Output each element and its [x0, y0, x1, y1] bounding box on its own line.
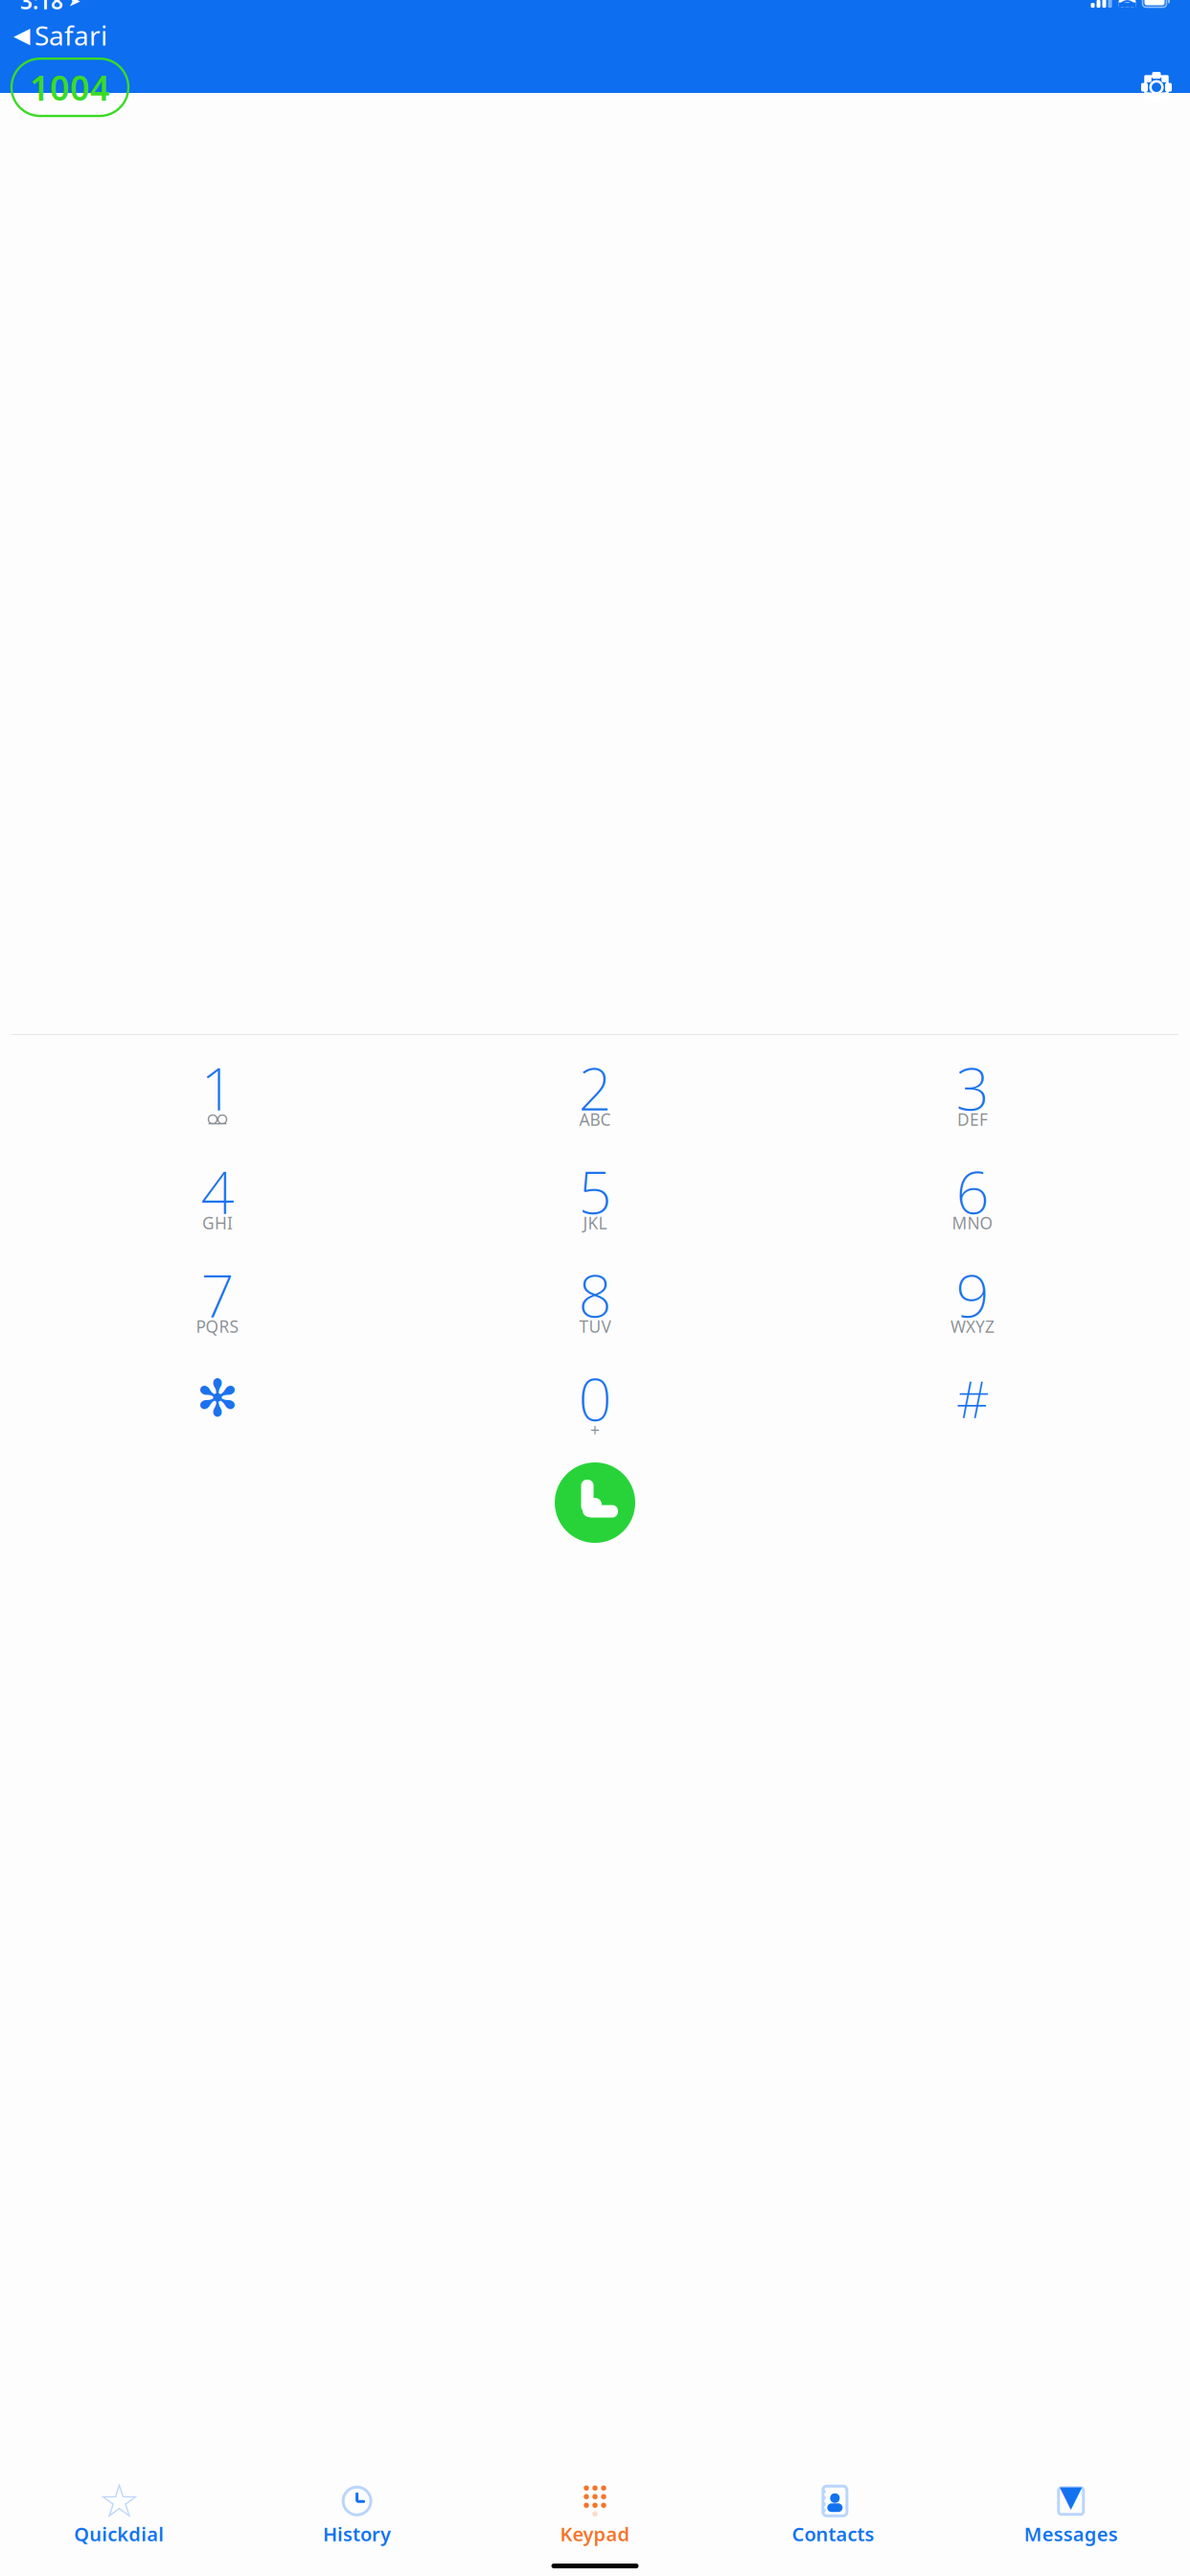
button[interactable]: ✻ — [29, 1367, 406, 1443]
staticText: ◀ — [13, 23, 30, 47]
button[interactable]: 0 — [406, 1367, 784, 1443]
staticText: + — [590, 1419, 600, 1441]
button[interactable]: Call — [555, 1462, 635, 1543]
staticText: 1 — [201, 1049, 234, 1127]
staticText: GHI — [202, 1212, 233, 1234]
staticText: JKL — [583, 1212, 607, 1234]
button[interactable]: # — [784, 1367, 1161, 1443]
button[interactable]: 1004 — [11, 59, 128, 116]
staticText: MNO — [952, 1212, 993, 1234]
staticText: Quickdial — [74, 2521, 164, 2547]
button[interactable]: ◀ — [7, 15, 114, 55]
button[interactable]: 3 — [784, 1056, 1161, 1133]
staticText: 6 — [956, 1152, 989, 1230]
staticText: ➤ — [68, 0, 80, 10]
staticText: TUV — [579, 1315, 611, 1337]
staticText: 4 — [201, 1152, 234, 1230]
staticText: History — [323, 2521, 391, 2547]
staticText: 3:18 — [20, 0, 63, 15]
button[interactable]: History — [238, 2488, 476, 2543]
staticText: 7 — [201, 1256, 234, 1334]
staticText: Messages — [1024, 2521, 1118, 2547]
button[interactable]: Contacts — [714, 2488, 952, 2543]
button[interactable]: 8 — [406, 1263, 784, 1340]
button[interactable]: 4 — [29, 1160, 406, 1236]
staticText: ☆ — [98, 2474, 140, 2528]
staticText: # — [956, 1364, 989, 1432]
staticText: Safari — [34, 17, 107, 53]
staticText: ▼ — [1060, 2479, 1082, 2513]
button[interactable]: Settings — [1134, 65, 1179, 109]
button[interactable]: ▼ — [952, 2488, 1190, 2543]
staticText: 0 — [578, 1359, 612, 1437]
staticText: 2 — [578, 1049, 612, 1127]
staticText: Keypad — [560, 2521, 630, 2547]
staticText: PQRS — [196, 1315, 239, 1337]
button[interactable]: Keypad — [476, 2488, 714, 2543]
button[interactable]: 6 — [784, 1160, 1161, 1236]
staticText: 3 — [956, 1049, 989, 1127]
staticText: 8 — [578, 1256, 612, 1334]
staticText: 1004 — [30, 64, 110, 110]
staticText: 9 — [956, 1256, 989, 1334]
button[interactable]: 9 — [784, 1263, 1161, 1340]
staticText: WXYZ — [950, 1315, 995, 1337]
staticText: 5 — [578, 1152, 612, 1230]
button[interactable]: 2 — [406, 1056, 784, 1133]
staticText: DEF — [957, 1108, 988, 1130]
button[interactable]: 7 — [29, 1263, 406, 1340]
staticText: Contacts — [792, 2521, 874, 2547]
button[interactable]: 5 — [406, 1160, 784, 1236]
button[interactable]: ☆ — [0, 2488, 238, 2543]
staticText: ABC — [579, 1108, 611, 1130]
button[interactable]: 1 — [29, 1056, 406, 1133]
staticText: ✻ — [196, 1369, 239, 1427]
